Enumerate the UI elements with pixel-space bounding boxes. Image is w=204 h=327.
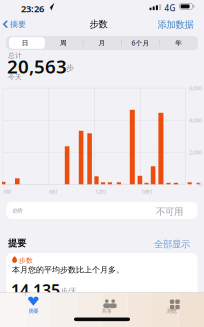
staticText: 6,000 xyxy=(189,85,202,92)
staticText: 18时 xyxy=(141,188,152,195)
staticText: 今天 xyxy=(8,73,22,81)
button[interactable]: 步数 xyxy=(6,253,197,327)
staticText: 0时 xyxy=(3,188,11,195)
button[interactable]: 摘要 xyxy=(1,293,65,324)
button[interactable]: 年 xyxy=(160,36,198,50)
staticText: 0 xyxy=(199,181,202,188)
staticText: 6个月 xyxy=(131,39,149,47)
staticText: 6时 xyxy=(49,188,57,195)
button[interactable]: 趋势 xyxy=(6,202,197,219)
staticText: 摘要 xyxy=(10,19,26,29)
staticText: 23:26 xyxy=(21,2,44,15)
staticText: 2,000 xyxy=(189,149,202,156)
staticText: 年 xyxy=(175,39,182,47)
staticText: 浏览 xyxy=(166,308,176,314)
button[interactable]: 共享 xyxy=(74,293,138,324)
button[interactable]: 添加数据 xyxy=(157,19,193,30)
staticText: 本月您的平均步数比上个月多。 xyxy=(12,265,124,275)
staticText: 步数 xyxy=(19,256,33,265)
staticText: 趋势 xyxy=(12,207,22,214)
button[interactable]: 6个月 xyxy=(121,36,160,50)
staticText: 步数 xyxy=(90,18,108,30)
staticText: 提要 xyxy=(8,237,26,249)
staticText: 14,135 xyxy=(11,279,60,301)
staticText: 共享 xyxy=(101,308,111,314)
staticText: 12时 xyxy=(95,188,106,195)
button[interactable]: 全部显示 xyxy=(154,238,190,250)
button[interactable]: 日 xyxy=(6,36,44,50)
staticText: 步 xyxy=(66,63,74,73)
staticText: 摘要 xyxy=(28,308,38,314)
button[interactable]: 月 xyxy=(83,36,121,50)
staticText: 日 xyxy=(22,39,29,47)
staticText: 步/天 xyxy=(61,286,77,295)
staticText: 月 xyxy=(98,39,105,47)
button[interactable]: 摘要 xyxy=(3,19,26,29)
staticText: 不可用 xyxy=(156,206,183,217)
staticText: 总计 xyxy=(8,51,22,60)
staticText: 20,563 xyxy=(7,54,67,79)
staticText: 4,000 xyxy=(189,117,202,124)
staticText: 周 xyxy=(60,39,67,47)
button[interactable]: 周 xyxy=(44,36,83,50)
button[interactable]: 浏览 xyxy=(139,293,203,324)
staticText: 添加数据 xyxy=(157,19,193,30)
staticText: 全部显示 xyxy=(154,238,190,250)
staticText: 4G xyxy=(164,3,175,13)
